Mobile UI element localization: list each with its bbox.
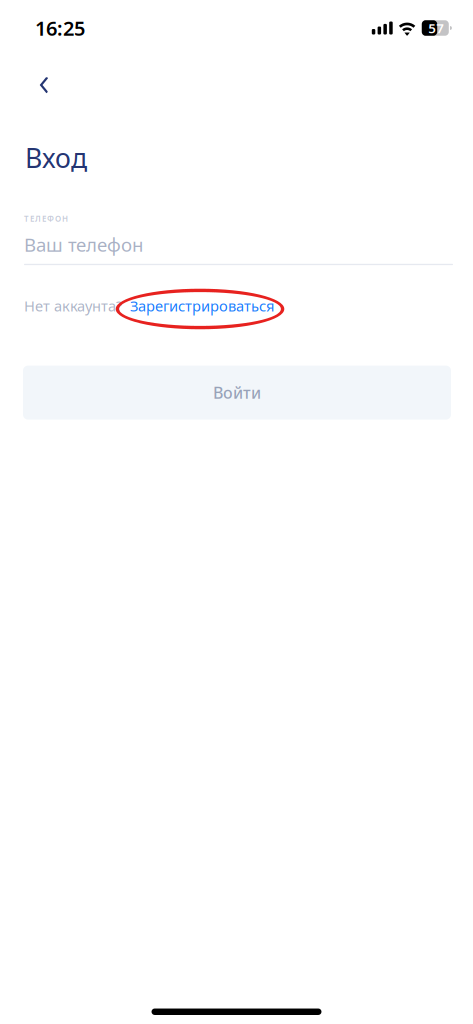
staticText: Ваш телефон: [24, 232, 143, 257]
staticText: Вход: [25, 140, 87, 175]
staticText: 57: [428, 19, 444, 37]
button[interactable]: Зарегистрироваться: [130, 296, 274, 316]
staticText: Войти: [213, 382, 261, 403]
staticText: Зарегистрироваться: [130, 296, 274, 316]
staticText: ТЕЛЕФОН: [24, 213, 68, 224]
staticText: Нет аккаунта?: [24, 296, 122, 316]
button[interactable]: Back: [26, 67, 62, 103]
button[interactable]: Войти: [23, 366, 451, 420]
staticText: 16:25: [35, 15, 85, 41]
